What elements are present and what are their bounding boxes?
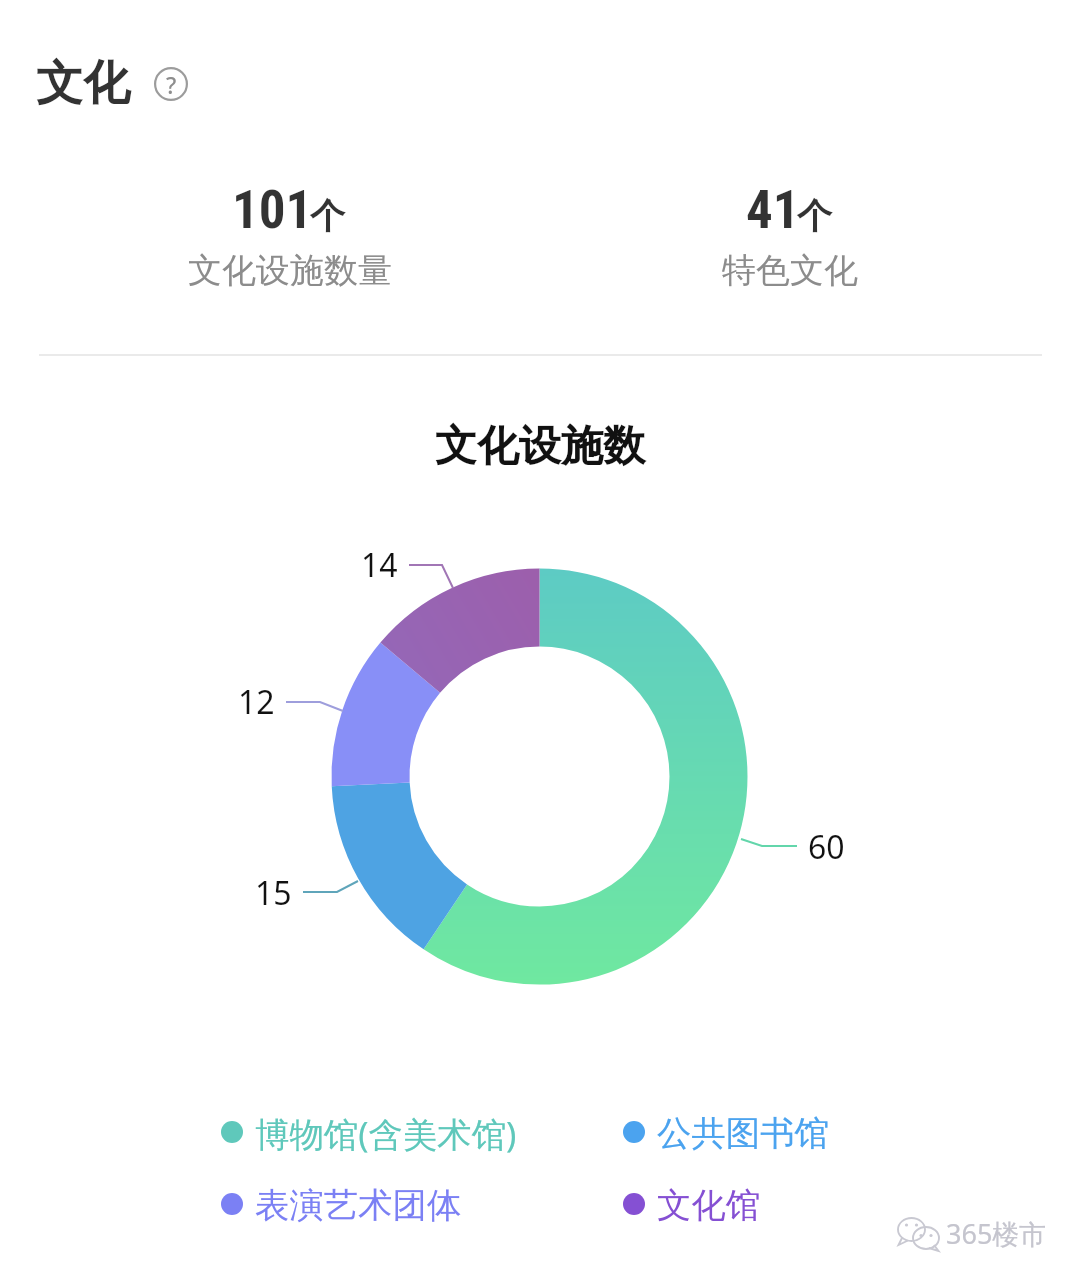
staticText: 14 (361, 543, 398, 587)
button[interactable]: 41 (540, 179, 1040, 292)
staticText: 文化设施数 (0, 420, 1080, 473)
staticText: 特色文化 (722, 249, 858, 292)
staticText: 个 (310, 194, 345, 238)
button[interactable]: 表演艺术团体 (221, 1178, 462, 1230)
staticText: 365楼市 (946, 1215, 1047, 1252)
other: 365楼市 (896, 1216, 1044, 1256)
staticText: 博物馆(含美术馆) (255, 1110, 517, 1157)
staticText: 公共图书馆 (657, 1112, 829, 1155)
staticText: 12 (238, 680, 275, 724)
staticText: 41 (746, 179, 800, 241)
staticText: 文化设施数量 (188, 249, 392, 292)
staticText: 文化馆 (657, 1184, 761, 1227)
staticText: 文化 (36, 54, 130, 113)
button[interactable]: 博物馆(含美术馆) (221, 1106, 517, 1158)
staticText: ? (166, 69, 177, 100)
staticText: 个 (797, 194, 832, 238)
button[interactable]: 文化 (36, 54, 188, 113)
button[interactable]: Help (154, 67, 188, 101)
staticText: 15 (255, 871, 292, 915)
button[interactable]: 文化馆 (623, 1178, 761, 1230)
staticText: 60 (808, 825, 845, 869)
staticText: 101 (232, 179, 313, 241)
staticText: 表演艺术团体 (255, 1184, 462, 1227)
button[interactable]: 101 (40, 179, 540, 292)
button[interactable]: 公共图书馆 (623, 1106, 829, 1158)
